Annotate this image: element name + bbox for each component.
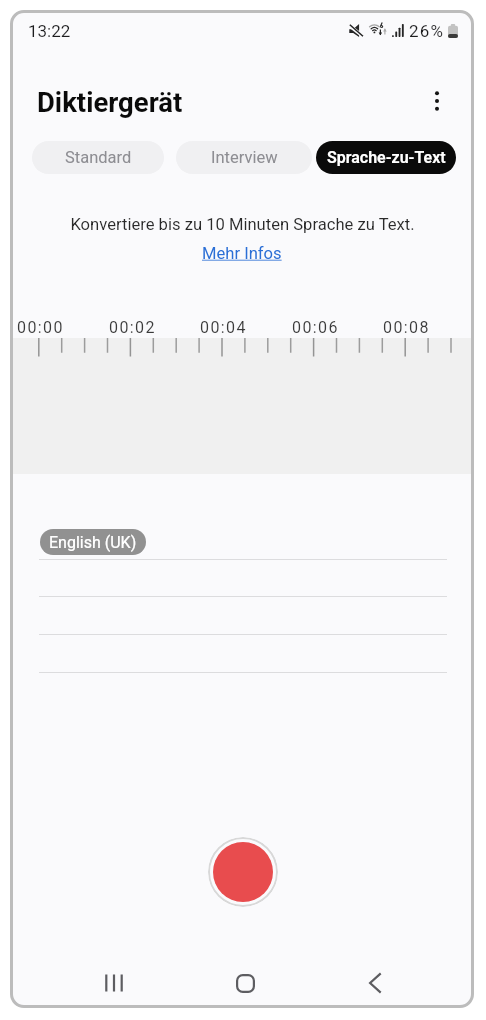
staticText: 00:04 (200, 318, 247, 337)
button[interactable]: English (UK) (40, 529, 146, 555)
staticText: Diktiergerät (37, 86, 183, 118)
staticText: Interview (211, 148, 278, 167)
button[interactable]: Home (219, 957, 271, 1008)
button[interactable]: Recent apps (88, 957, 140, 1008)
button[interactable]: Interview (176, 141, 312, 174)
staticText: Konvertiere bis zu 10 Minuten Sprache zu… (70, 215, 415, 234)
button[interactable]: Record (208, 837, 278, 907)
button[interactable]: Sprache-zu-Text (316, 141, 456, 174)
staticText: Mehr Infos (202, 244, 282, 263)
staticText: 00:08 (383, 318, 430, 337)
staticText: 26% (409, 21, 445, 41)
staticText: 00:06 (292, 318, 339, 337)
button[interactable]: Back (349, 957, 401, 1008)
staticText: Standard (65, 148, 132, 167)
staticText: 13:22 (28, 21, 71, 41)
staticText: 00:00 (17, 318, 64, 337)
button[interactable]: Mehr Infos (202, 244, 282, 263)
staticText: Sprache-zu-Text (327, 148, 446, 167)
button[interactable]: More options (415, 79, 458, 122)
button[interactable]: Standard (32, 141, 164, 174)
staticText: 00:02 (109, 318, 156, 337)
staticText: English (UK) (49, 533, 137, 552)
